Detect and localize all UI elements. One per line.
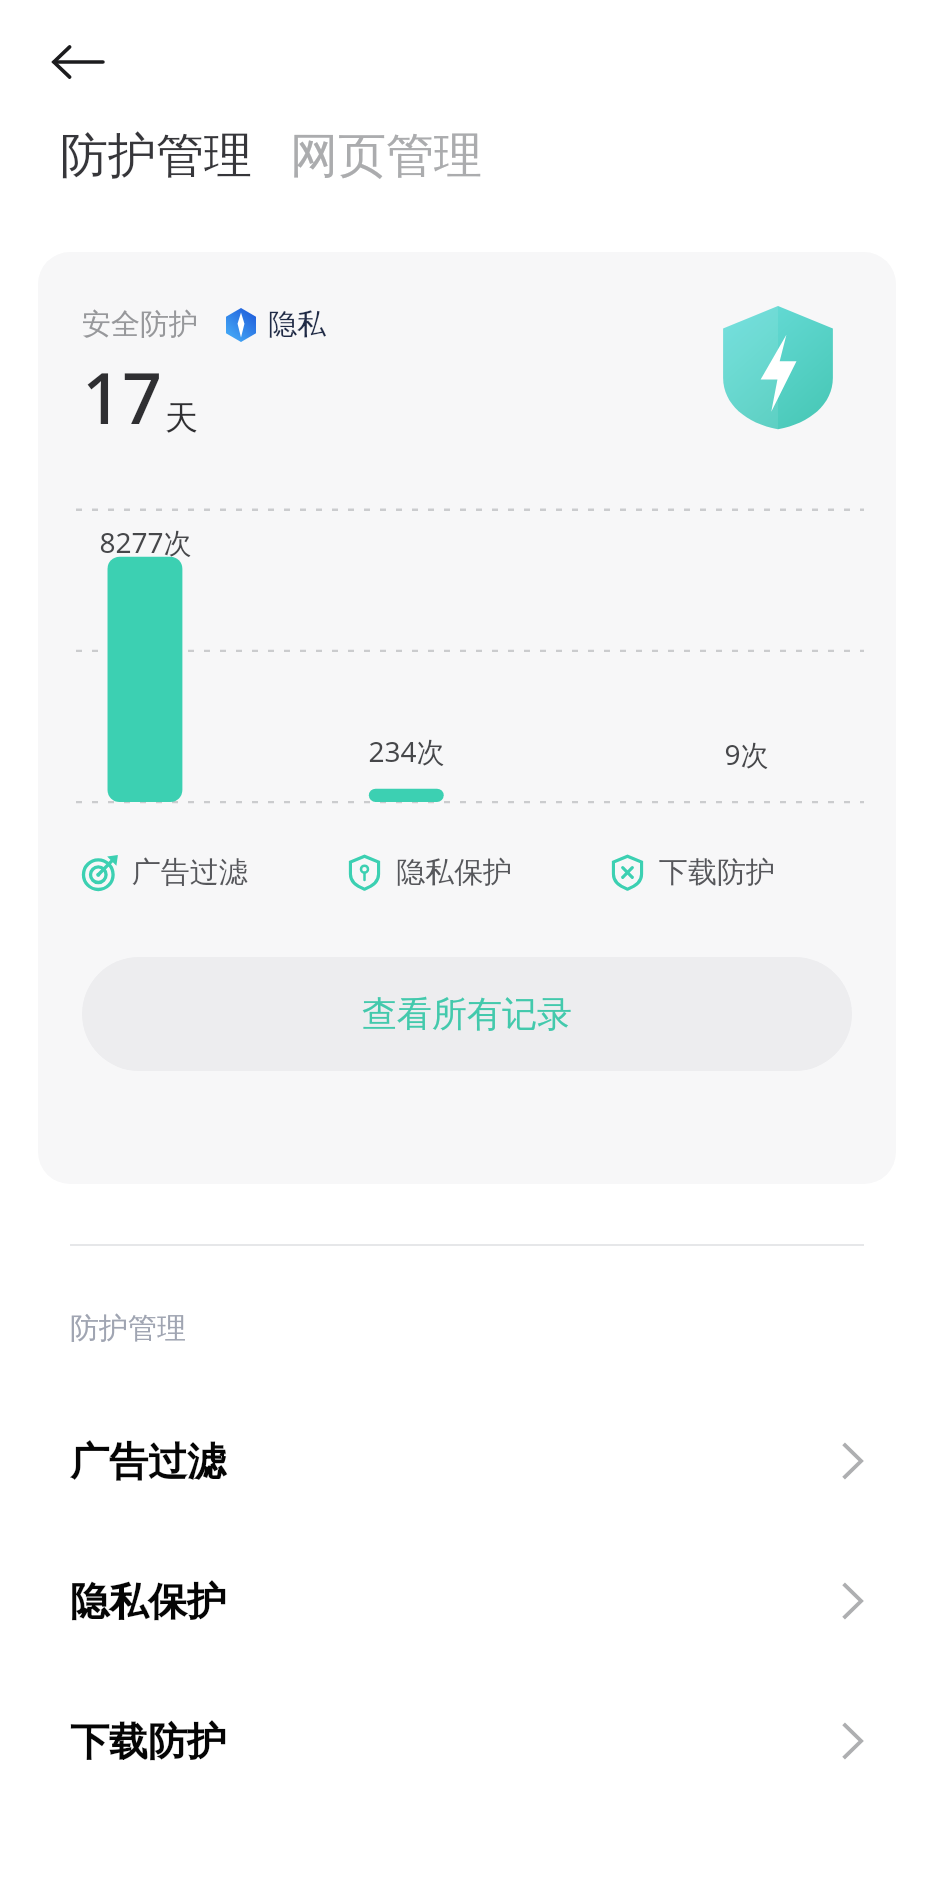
staticText: 下载防护 [659, 854, 775, 891]
staticText: 防护管理 [70, 1310, 186, 1347]
button[interactable]: 隐私保护 [0, 1531, 934, 1671]
staticText: 天 [165, 397, 198, 439]
button[interactable]: Back [42, 26, 114, 98]
staticText: 隐私 [268, 306, 326, 343]
button[interactable]: 网页管理 [290, 126, 482, 186]
staticText: 8277次 [99, 523, 192, 561]
staticText: 9次 [724, 735, 769, 773]
button[interactable]: 查看所有记录 [82, 957, 852, 1071]
button[interactable]: 下载防护 [609, 854, 872, 891]
staticText: 隐私保护 [396, 854, 512, 891]
staticText: 网页管理 [290, 126, 482, 186]
staticText: 防护管理 [60, 126, 252, 186]
staticText: 广告过滤 [132, 854, 248, 891]
button[interactable]: 隐私保护 [346, 854, 609, 891]
button[interactable]: 下载防护 [0, 1671, 934, 1811]
button[interactable]: 广告过滤 [0, 1391, 934, 1531]
staticText: 广告过滤 [70, 1437, 840, 1486]
staticText: 17 [82, 349, 163, 444]
staticText: 下载防护 [70, 1717, 840, 1766]
staticText: 234次 [368, 732, 445, 770]
button[interactable]: 防护管理 [60, 126, 252, 186]
button[interactable]: 广告过滤 [82, 854, 346, 891]
staticText: 安全防护 [82, 306, 198, 343]
staticText: 隐私保护 [70, 1577, 840, 1626]
staticText: 查看所有记录 [362, 992, 572, 1036]
